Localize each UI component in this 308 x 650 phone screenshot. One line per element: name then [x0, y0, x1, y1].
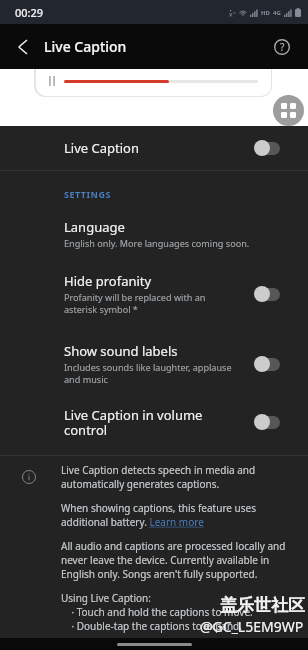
staticText: Live Caption [44, 37, 127, 56]
staticText: Includes sounds like laughter, applause … [64, 361, 232, 386]
staticText: English only. More languages coming soon… [64, 237, 250, 249]
staticText: Live Caption detects speech in media and… [61, 463, 256, 491]
staticText: @GC_L5EM9WP [200, 617, 304, 636]
staticText: 4G [273, 9, 281, 17]
button[interactable]: Language [0, 209, 308, 257]
staticText: Profanity will be replaced with an aster… [64, 291, 206, 316]
button[interactable]: Help [267, 32, 297, 62]
staticText: ? [280, 40, 285, 54]
staticText: Using Live Caption: · Touch and hold the… [61, 591, 253, 633]
staticText: All audio and captions are processed loc… [61, 539, 286, 581]
button[interactable]: Live Caption [0, 126, 308, 169]
staticText: Hide profanity [64, 272, 152, 290]
staticText: When showing captions, this feature uses… [61, 501, 256, 529]
button[interactable]: Live Caption in volume control [0, 398, 308, 446]
staticText: 00:29 [15, 5, 44, 20]
staticText: Show sound labels [64, 342, 178, 360]
button[interactable]: Hide profanity [0, 263, 308, 325]
staticText: 盖乐世社区 [220, 595, 305, 616]
button[interactable]: Navigate up [5, 30, 39, 64]
staticText: HD [261, 9, 270, 17]
staticText: Language [64, 218, 125, 236]
button[interactable]: Show sound labels [0, 333, 308, 395]
staticText: Live Caption [64, 139, 139, 157]
staticText: Live Caption in volume control [64, 406, 203, 439]
staticText: SETTINGS [64, 188, 111, 200]
button[interactable]: Apps [273, 95, 304, 126]
